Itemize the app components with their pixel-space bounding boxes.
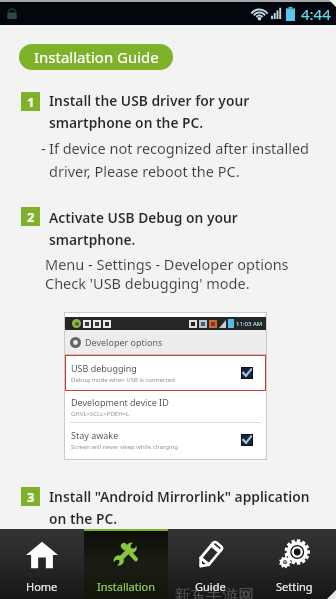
staticText: Guide [195,579,226,594]
staticText: 11:03 AM [236,320,263,328]
staticText: driver, Please reboot the PC. [49,161,240,181]
staticText: Home [26,579,58,594]
button[interactable]: Installation [84,529,168,599]
staticText: Setting [276,579,313,594]
button[interactable]: Installation Guide [19,44,173,70]
staticText: Screen will never sleep while charging [71,443,178,451]
staticText: 新东手游网 [174,586,254,599]
staticText: 2 [27,208,35,226]
staticText: 4:44 [301,4,331,24]
button[interactable]: Home [0,529,84,599]
staticText: Install the USB driver for your [49,91,250,110]
staticText: GHVL=SCLL=PDEH=L [71,410,130,418]
staticText: - [41,138,46,158]
staticText: 1 [27,93,35,111]
staticText: on the PC. [49,509,118,528]
staticText: Developer options [85,336,163,348]
staticText: Installation Guide [34,47,159,67]
staticText: Development device ID [71,396,169,408]
staticText: USB debugging [71,362,137,374]
button[interactable]: Guide [168,529,252,599]
button[interactable]: Setting [252,529,336,599]
staticText: Installation [97,579,156,594]
staticText: smartphone on the PC. [49,113,204,132]
staticText: Debug mode when USB is connected [71,376,175,384]
staticText: If device not recognized after installed [49,138,310,158]
staticText: Activate USB Debug on your [49,208,238,227]
staticText: Menu - Settings - Developer options [45,254,289,274]
staticText: 3 [27,488,35,506]
staticText: Check 'USB debugging' mode. [45,273,250,293]
staticText: Stay awake [71,429,119,441]
staticText: smartphone. [49,230,136,249]
staticText: Install "Android Mirrorlink" application [49,487,310,506]
